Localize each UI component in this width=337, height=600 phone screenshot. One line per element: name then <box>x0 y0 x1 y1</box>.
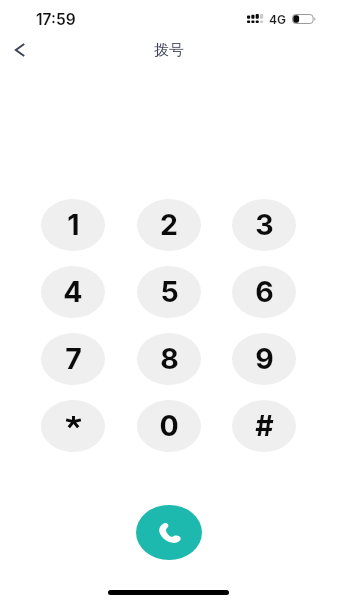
staticText: 拨号 <box>154 41 184 60</box>
button[interactable]: 4 <box>41 266 105 318</box>
staticText: 6 <box>255 274 274 308</box>
staticText: 4 <box>63 274 83 308</box>
staticText: 0 <box>159 408 179 442</box>
button[interactable]: Back <box>4 34 36 66</box>
staticText: 2 <box>160 207 178 241</box>
button[interactable]: 5 <box>137 266 201 318</box>
staticText: 3 <box>255 207 274 241</box>
button[interactable]: 9 <box>232 333 296 385</box>
button[interactable]: 8 <box>137 333 201 385</box>
button[interactable]: 7 <box>41 333 105 385</box>
button[interactable]: 0 <box>137 400 201 452</box>
staticText: 5 <box>160 274 179 308</box>
staticText: 4G <box>269 12 286 27</box>
staticText: 9 <box>255 341 274 375</box>
button[interactable]: Call <box>136 505 202 560</box>
staticText: 17:59 <box>36 10 76 29</box>
button[interactable] <box>41 400 105 452</box>
staticText: 8 <box>160 341 179 375</box>
staticText: 7 <box>65 341 82 375</box>
button[interactable]: # <box>232 400 296 452</box>
staticText: 1 <box>67 207 80 241</box>
button[interactable]: 1 <box>41 199 105 251</box>
staticText: # <box>255 408 274 442</box>
button[interactable]: 2 <box>137 199 201 251</box>
button[interactable]: 3 <box>232 199 296 251</box>
button[interactable]: 6 <box>232 266 296 318</box>
